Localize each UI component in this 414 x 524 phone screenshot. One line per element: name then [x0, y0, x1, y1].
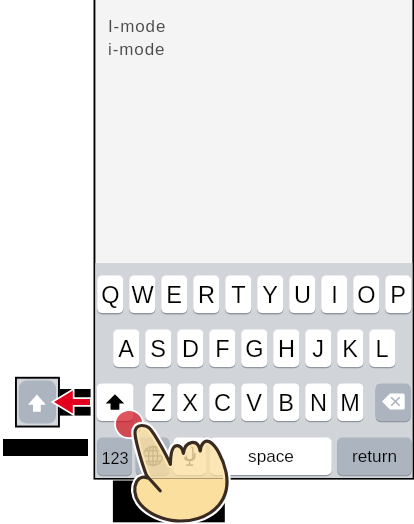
staticText: N [310, 390, 327, 416]
staticText: F [215, 336, 230, 362]
button[interactable]: P [385, 276, 411, 314]
staticText: B [278, 390, 294, 416]
staticText: S [150, 336, 166, 362]
button[interactable]: U [289, 276, 315, 314]
staticText: H [278, 336, 295, 362]
button[interactable]: R [193, 276, 219, 314]
button[interactable]: N [305, 384, 331, 422]
staticText: L [375, 336, 389, 362]
button[interactable]: B [273, 384, 299, 422]
staticText: C [214, 390, 231, 416]
button[interactable]: M [337, 384, 363, 422]
staticText: M [340, 390, 360, 416]
staticText: Z [151, 390, 166, 416]
button[interactable]: Z [145, 384, 171, 422]
button[interactable]: 123 [97, 439, 132, 477]
button[interactable]: D [177, 330, 203, 368]
button[interactable]: X [177, 384, 203, 422]
button[interactable]: K [337, 330, 363, 368]
button[interactable]: G [241, 330, 267, 368]
button[interactable]: return [337, 436, 411, 474]
button[interactable]: Switch keyboard [136, 438, 170, 476]
staticText: X [182, 390, 198, 416]
staticText: Y [262, 282, 278, 308]
button[interactable]: space [210, 436, 332, 474]
button[interactable]: T [225, 276, 251, 314]
button[interactable]: Q [97, 276, 123, 314]
button[interactable]: Backspace [376, 383, 411, 421]
button[interactable]: S [145, 330, 171, 368]
staticText: G [245, 336, 264, 362]
button[interactable]: Shift [97, 383, 134, 421]
staticText: J [312, 336, 324, 362]
button[interactable]: L [369, 330, 395, 368]
button[interactable]: C [209, 384, 235, 422]
staticText: O [357, 282, 376, 308]
staticText: D [182, 336, 199, 362]
staticText: E [166, 282, 182, 308]
staticText: 123 [101, 449, 129, 467]
staticText: V [246, 390, 262, 416]
staticText: return [352, 446, 397, 465]
button[interactable]: E [161, 276, 187, 314]
button[interactable]: Y [257, 276, 283, 314]
button[interactable]: W [129, 276, 155, 314]
staticText: R [198, 282, 215, 308]
button[interactable]: A [113, 330, 139, 368]
staticText: A [118, 336, 134, 362]
staticText: K [342, 336, 358, 362]
button[interactable]: V [241, 384, 267, 422]
button[interactable]: I [321, 276, 347, 314]
button[interactable]: H [273, 330, 299, 368]
staticText: space [248, 446, 294, 465]
staticText: W [131, 282, 154, 308]
staticText: i-mode [108, 40, 166, 59]
staticText: T [231, 282, 246, 308]
staticText: I-mode [108, 17, 167, 36]
button[interactable]: F [209, 330, 235, 368]
button[interactable]: J [305, 330, 331, 368]
staticText: P [390, 282, 406, 308]
staticText: U [294, 282, 311, 308]
staticText: Q [101, 282, 120, 308]
button[interactable]: O [353, 276, 379, 314]
staticText: I [331, 282, 338, 308]
button[interactable]: Dictation [173, 438, 206, 476]
